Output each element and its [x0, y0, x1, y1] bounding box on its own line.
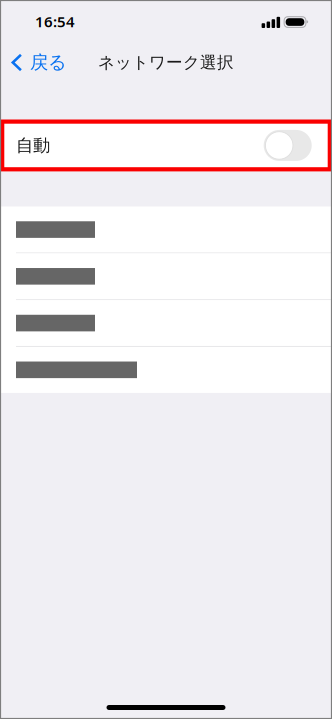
button[interactable]: 自動 — [4, 124, 328, 167]
staticText: 自動 — [16, 135, 50, 156]
button[interactable]: 戻る — [0, 42, 75, 82]
button[interactable] — [0, 207, 332, 252]
button[interactable] — [0, 347, 332, 393]
staticText: ネットワーク選択 — [98, 52, 234, 73]
button[interactable] — [0, 300, 332, 346]
staticText: 戻る — [30, 51, 67, 74]
button[interactable] — [0, 253, 332, 299]
staticText: 16:54 — [35, 11, 75, 32]
